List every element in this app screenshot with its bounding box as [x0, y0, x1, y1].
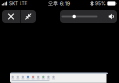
staticText: SKT — [9, 1, 18, 6]
button[interactable]: Volume — [105, 10, 117, 23]
staticText: 95% — [95, 1, 106, 6]
staticText: 오후 6:19 — [48, 0, 70, 7]
button[interactable]: Close — [2, 10, 20, 23]
button[interactable]: Exit full screen — [20, 10, 36, 23]
staticText: LTE — [19, 1, 27, 6]
